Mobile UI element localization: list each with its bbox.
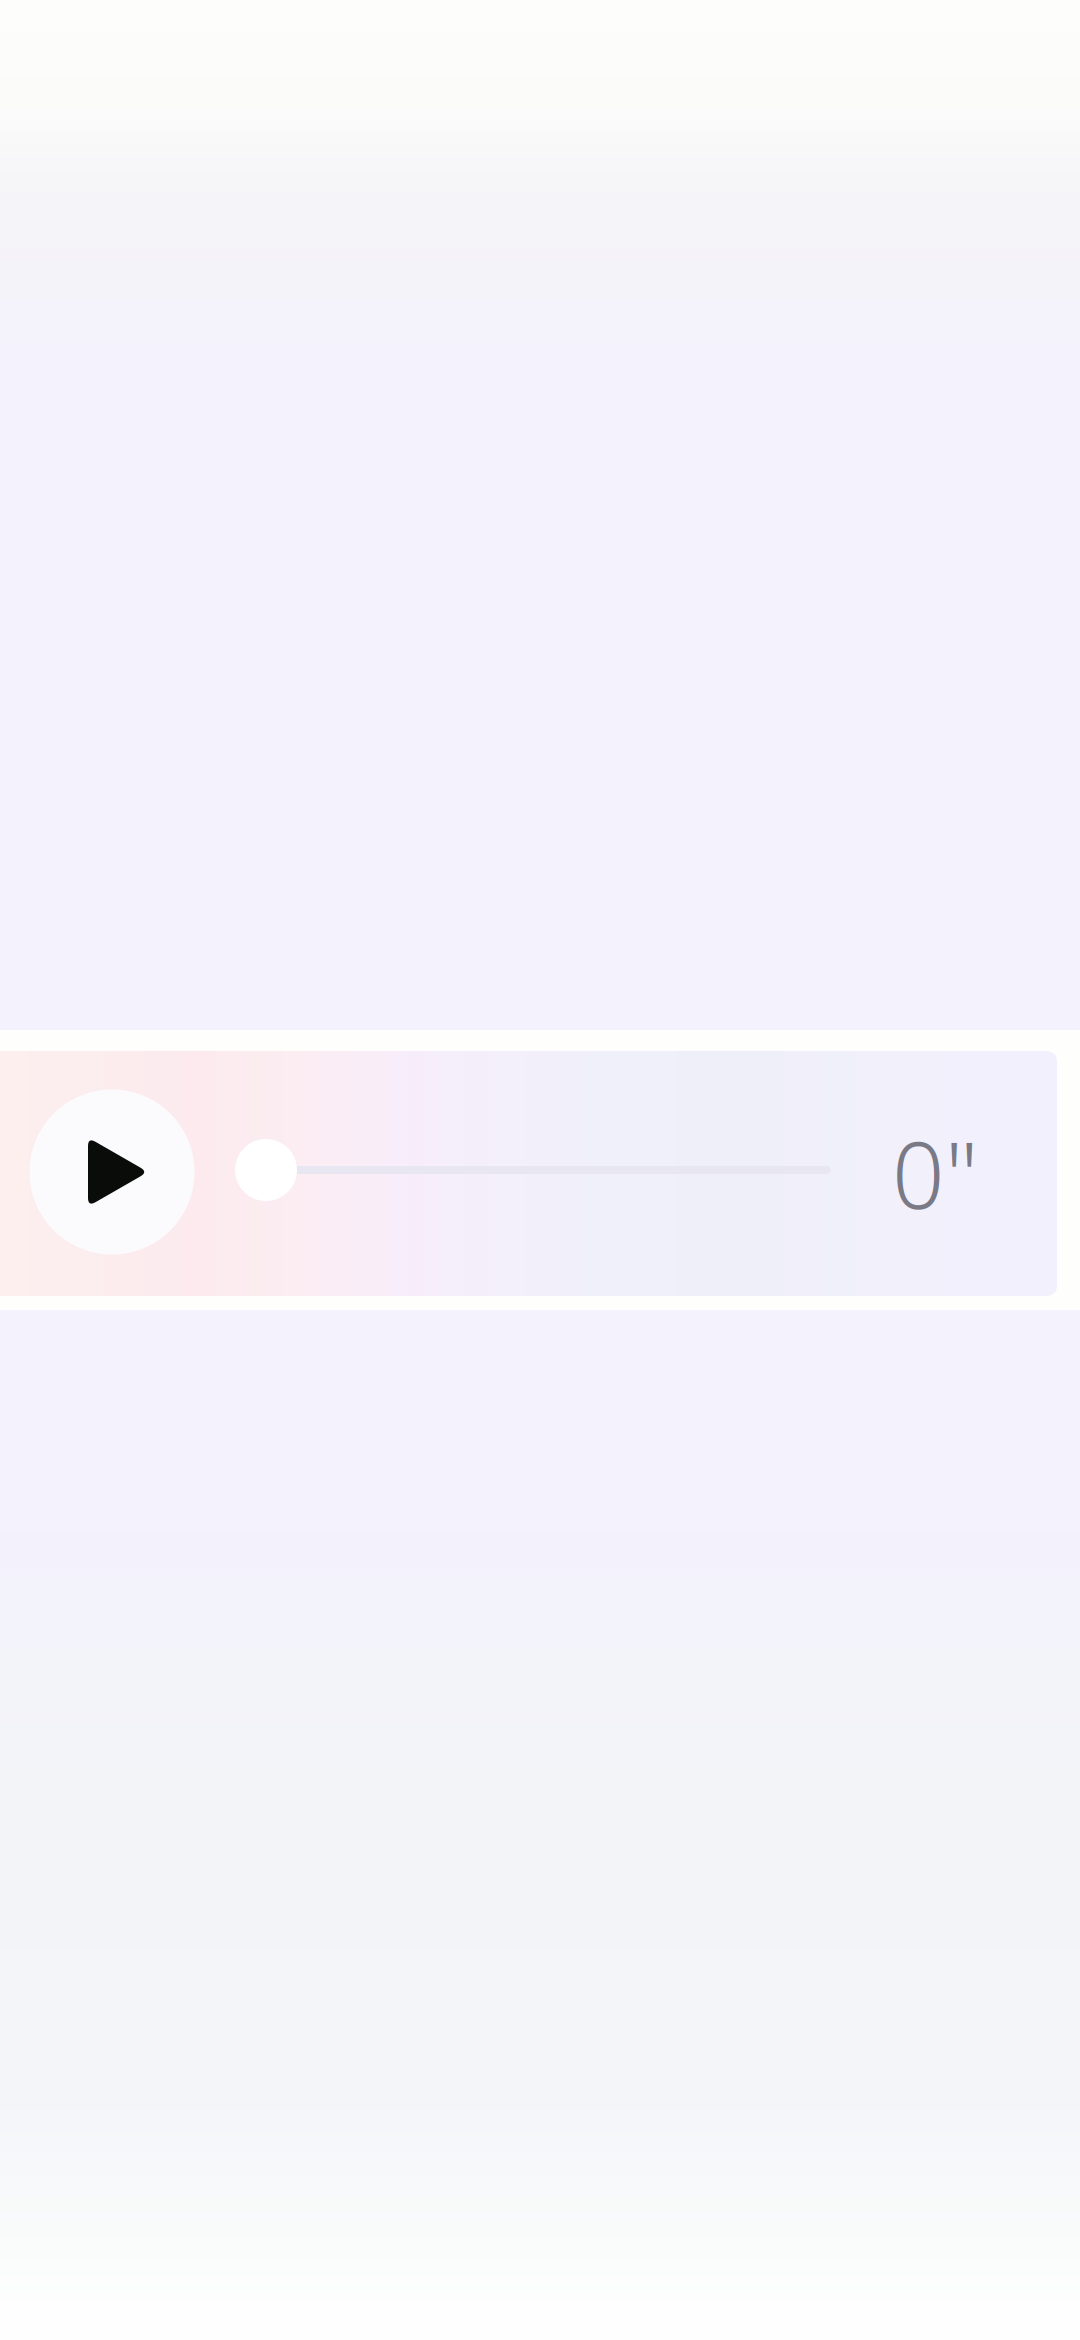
button[interactable]: Voice memo, 0 seconds <box>0 1030 1080 1310</box>
staticText: 0" <box>892 1112 978 1234</box>
button[interactable]: Play <box>29 1089 194 1254</box>
